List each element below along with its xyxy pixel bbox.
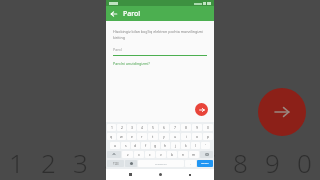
button[interactable]: i <box>181 133 191 140</box>
staticText: n <box>182 152 185 157</box>
staticText: O'zbekcha <box>155 162 167 165</box>
button[interactable]: 8 <box>181 124 191 131</box>
button[interactable]: 2 <box>117 124 126 131</box>
button[interactable]: 9 <box>192 124 202 131</box>
staticText: 2 <box>121 125 123 130</box>
staticText: v <box>160 152 162 157</box>
button[interactable]: m <box>189 151 199 158</box>
staticText: Parolni unutdingizmi? <box>113 61 150 66</box>
staticText: d <box>134 143 137 148</box>
staticText: b <box>171 152 174 157</box>
button[interactable]: j <box>171 142 180 149</box>
button[interactable]: a <box>110 142 120 149</box>
button[interactable]: 5 <box>148 124 158 131</box>
button[interactable]: Change language <box>125 160 137 167</box>
button[interactable]: 4 <box>137 124 147 131</box>
staticText: 0 <box>207 125 209 130</box>
staticText: f <box>145 143 147 148</box>
staticText: Keyingi <box>201 162 209 165</box>
staticText: ?123 <box>113 162 119 166</box>
staticText: . <box>190 162 191 166</box>
button[interactable]: Space <box>138 160 184 167</box>
staticText: s <box>125 143 127 148</box>
staticText: ' <box>205 143 206 148</box>
staticText: 1 <box>111 125 113 130</box>
button[interactable]: Symbols <box>107 160 124 167</box>
button[interactable]: 6 <box>159 124 169 131</box>
button[interactable]: 1 <box>107 124 116 131</box>
staticText: 8 <box>233 145 248 180</box>
staticText: c <box>149 152 151 157</box>
button[interactable]: r <box>137 133 147 140</box>
staticText: g <box>154 143 157 148</box>
staticText: o <box>196 134 199 139</box>
staticText: m <box>192 152 196 157</box>
staticText: 9 <box>265 145 280 180</box>
button[interactable]: Next <box>258 88 306 136</box>
button[interactable]: 0 <box>203 124 213 131</box>
staticText: z <box>127 152 129 157</box>
staticText: 0 <box>297 145 312 180</box>
button[interactable]: Back <box>125 169 136 180</box>
button[interactable]: v <box>156 151 166 158</box>
button[interactable]: 3 <box>127 124 136 131</box>
staticText: 3 <box>131 125 133 130</box>
button[interactable]: z <box>122 151 133 158</box>
button[interactable]: c <box>145 151 155 158</box>
staticText: Hisobingiz bilan bog'liq elektron pochta… <box>113 29 207 40</box>
staticText: l <box>195 143 196 148</box>
button[interactable]: f <box>141 142 150 149</box>
button[interactable]: h <box>161 142 170 149</box>
staticText: 4 <box>105 145 120 180</box>
staticText: 5 <box>152 125 154 130</box>
staticText: 5 <box>137 145 152 180</box>
button[interactable]: Home <box>155 169 166 180</box>
button[interactable]: Shift <box>107 151 121 158</box>
button[interactable]: u <box>170 133 180 140</box>
staticText: k <box>185 143 187 148</box>
staticText: t <box>152 134 154 139</box>
button[interactable]: Back <box>106 6 121 21</box>
button[interactable]: b <box>167 151 177 158</box>
staticText: 6 <box>169 145 184 180</box>
button[interactable]: t <box>148 133 158 140</box>
button[interactable]: y <box>159 133 169 140</box>
button[interactable]: w <box>117 133 126 140</box>
button[interactable]: e <box>127 133 136 140</box>
button[interactable]: s <box>121 142 130 149</box>
staticText: q <box>110 134 113 139</box>
staticText: Parol <box>123 9 141 19</box>
button[interactable]: x <box>134 151 144 158</box>
button[interactable]: Parolni unutdingizmi? <box>113 61 150 66</box>
staticText: Parol <box>113 47 122 52</box>
button[interactable]: n <box>178 151 188 158</box>
button[interactable]: p <box>203 133 213 140</box>
button[interactable]: 7 <box>170 124 180 131</box>
staticText: j <box>175 143 176 148</box>
staticText: r <box>141 134 143 139</box>
button[interactable]: ' <box>201 142 210 149</box>
button[interactable]: Backspace <box>200 151 213 158</box>
staticText: u <box>174 134 177 139</box>
button[interactable]: Next <box>197 160 213 167</box>
staticText: e <box>131 134 133 139</box>
button[interactable]: Parol <box>113 47 207 56</box>
staticText: 7 <box>201 145 216 180</box>
staticText: i <box>186 134 187 139</box>
staticText: 4 <box>141 125 143 130</box>
button[interactable]: o <box>192 133 202 140</box>
button[interactable]: Recents <box>184 169 195 180</box>
staticText: y <box>163 134 165 139</box>
staticText: h <box>164 143 167 148</box>
staticText: 8 <box>185 125 187 130</box>
staticText: 9 <box>196 125 198 130</box>
staticText: 6 <box>163 125 165 130</box>
button[interactable]: l <box>191 142 200 149</box>
button[interactable]: d <box>131 142 140 149</box>
button[interactable]: g <box>151 142 160 149</box>
staticText: 3 <box>73 145 88 180</box>
button[interactable]: q <box>107 133 116 140</box>
button[interactable]: k <box>181 142 190 149</box>
button[interactable]: Continue <box>195 103 208 116</box>
